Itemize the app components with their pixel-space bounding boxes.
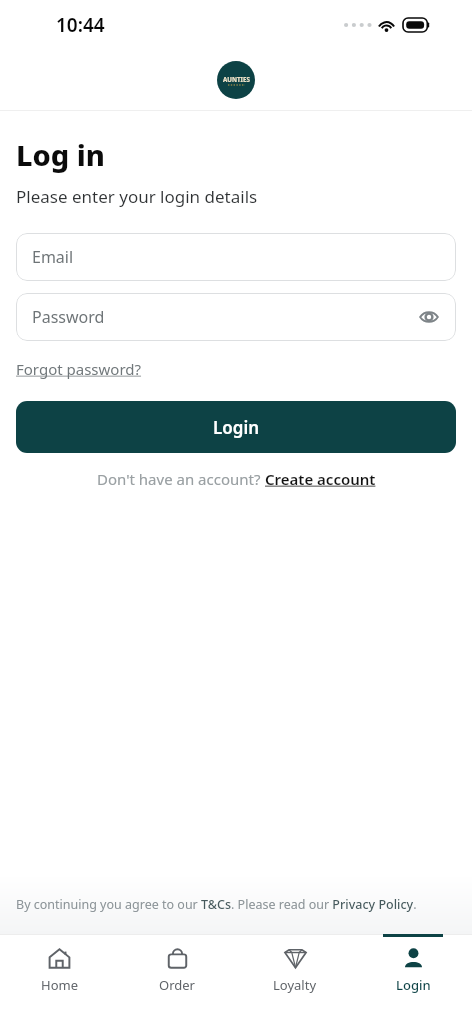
- staticText: By continuing you agree to our T&Cs. Ple…: [16, 896, 417, 913]
- button[interactable]: Password: [16, 293, 456, 341]
- button[interactable]: Email: [16, 233, 456, 281]
- button[interactable]: Login: [354, 934, 472, 994]
- button[interactable]: Create account: [265, 469, 376, 489]
- staticText: Home: [41, 976, 78, 994]
- staticText: Email: [32, 246, 74, 268]
- staticText: Log in: [16, 135, 105, 174]
- staticText: Don't have an account?: [97, 469, 265, 489]
- staticText: Login: [396, 976, 431, 994]
- staticText: Forgot password?: [16, 359, 142, 379]
- staticText: Login: [213, 416, 260, 439]
- button[interactable]: Forgot password?: [16, 359, 142, 379]
- staticText: Please enter your login details: [16, 185, 258, 208]
- button[interactable]: Order: [118, 934, 236, 994]
- staticText: Loyalty: [273, 976, 317, 994]
- button[interactable]: Loyalty: [236, 934, 354, 994]
- button[interactable]: Show password: [416, 304, 442, 330]
- staticText: Password: [32, 306, 105, 328]
- staticText: AUNTIES: [223, 75, 250, 83]
- button[interactable]: By continuing you agree to our T&Cs. Ple…: [0, 896, 472, 913]
- button[interactable]: Login: [16, 401, 456, 453]
- button[interactable]: Home: [0, 934, 118, 994]
- staticText: Order: [159, 976, 195, 994]
- staticText: 10:44: [56, 12, 105, 38]
- button[interactable]: Aunties logo: [217, 61, 255, 99]
- staticText: Create account: [265, 469, 376, 489]
